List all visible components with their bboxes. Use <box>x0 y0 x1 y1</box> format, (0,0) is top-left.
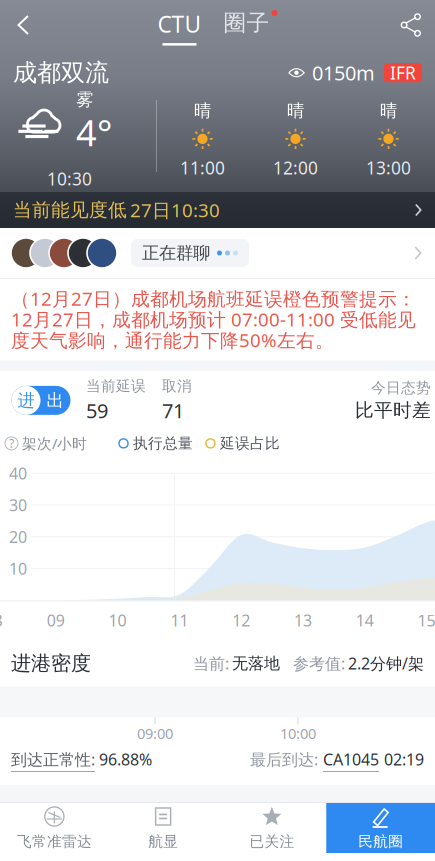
staticText: 已关注 <box>249 832 294 850</box>
staticText: 10:30 <box>47 167 92 190</box>
staticText: 02:19 <box>384 749 424 770</box>
staticText: 10:00 <box>280 724 316 743</box>
staticText: 飞常准雷达 <box>17 832 92 850</box>
staticText: 民航圈 <box>358 832 403 850</box>
button[interactable]: 出 <box>11 386 70 415</box>
staticText: 14 <box>356 610 374 631</box>
staticText: 执行总量 <box>133 434 193 452</box>
staticText: 参考值: <box>293 653 345 674</box>
staticText: 13:00 <box>366 156 411 179</box>
staticText: ? <box>9 435 14 451</box>
button[interactable]: CA1045 <box>318 749 379 770</box>
staticText: 成都双流 <box>13 58 109 87</box>
staticText: 晴 <box>380 100 397 121</box>
staticText: 架次/小时 <box>22 434 87 453</box>
staticText: 11 <box>170 610 188 631</box>
staticText: 15 <box>418 610 435 631</box>
staticText: 96.88% <box>99 749 152 770</box>
staticText: （12月27日）成都机场航班延误橙色预警提示：12月27日，成都机场预计 07:… <box>11 286 416 352</box>
staticText: 延误占比 <box>220 434 280 452</box>
staticText: 10 <box>109 610 127 631</box>
staticText: 进港密度 <box>11 651 91 676</box>
button[interactable]: 到达正常性: <box>11 749 95 770</box>
staticText: 当前延误 <box>86 377 146 395</box>
staticText: 40 <box>9 462 27 484</box>
staticText: 2.2分钟/架 <box>348 653 424 674</box>
staticText: 4° <box>76 108 112 156</box>
staticText: 8 <box>0 610 2 631</box>
staticText: 12 <box>232 610 250 631</box>
staticText: CA1045 <box>323 749 379 770</box>
staticText: 最后到达: <box>250 749 318 770</box>
button[interactable]: 正在群聊 <box>0 228 435 278</box>
staticText: 当前: <box>193 653 229 674</box>
staticText: CTU <box>157 9 201 39</box>
staticText: 雾 <box>76 89 93 110</box>
staticText: 到达正常性: <box>11 749 95 770</box>
staticText: 晴 <box>287 100 304 121</box>
staticText: 今日态势 <box>371 379 431 397</box>
staticText: 比平时差 <box>355 399 431 422</box>
staticText: 71 <box>162 397 184 424</box>
button[interactable]: 圈子 <box>223 3 277 47</box>
staticText: 27日10:30 <box>130 198 220 222</box>
button[interactable]: 当前能见度低 <box>0 192 435 228</box>
staticText: 取消 <box>162 377 192 395</box>
staticText: 出 <box>46 390 63 411</box>
staticText: 晴 <box>194 100 211 121</box>
button[interactable]: 航显 <box>109 803 218 853</box>
button[interactable]: Share <box>387 3 435 47</box>
staticText: 59 <box>86 397 108 424</box>
staticText: 09 <box>47 610 65 631</box>
button[interactable]: CTU <box>157 3 201 47</box>
staticText: 圈子 <box>223 9 269 37</box>
staticText: 无落地 <box>232 653 280 673</box>
staticText: 20 <box>9 526 27 547</box>
staticText: 10 <box>9 558 27 579</box>
staticText: 进 <box>17 390 34 411</box>
staticText: 30 <box>9 494 27 515</box>
button[interactable]: 民航圈 <box>326 803 435 853</box>
staticText: IFR <box>390 61 416 84</box>
button[interactable]: 飞常准雷达 <box>0 803 109 853</box>
staticText: 航显 <box>148 832 178 850</box>
staticText: 09:00 <box>137 724 173 743</box>
staticText: 12:00 <box>273 156 318 179</box>
staticText: 11:00 <box>180 156 225 179</box>
button[interactable]: Back <box>0 3 48 47</box>
staticText: 当前能见度低 <box>13 198 127 221</box>
button[interactable]: 已关注 <box>217 803 326 853</box>
staticText: 0150m <box>312 59 375 86</box>
staticText: 13 <box>294 610 312 631</box>
staticText: 正在群聊 <box>142 242 210 264</box>
